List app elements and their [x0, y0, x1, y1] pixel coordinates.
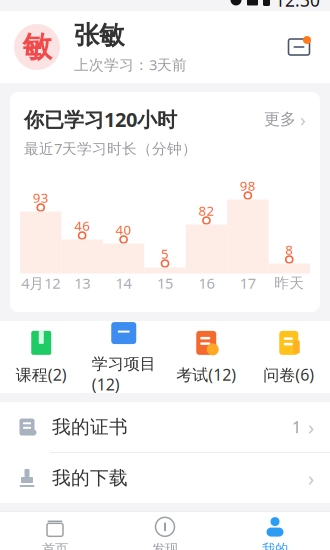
button[interactable]: 发现: [110, 512, 220, 550]
staticText: 16: [198, 273, 214, 293]
staticText: 最近7天学习时长（分钟）: [24, 138, 197, 158]
staticText: 昨天: [274, 274, 304, 292]
button[interactable]: 我的下载: [0, 453, 330, 503]
staticText: 发现: [152, 541, 178, 550]
staticText: 14: [116, 273, 132, 293]
staticText: 张敏: [74, 20, 124, 51]
button[interactable]: 我的: [220, 512, 330, 550]
button[interactable]: 头像: [14, 24, 60, 70]
button[interactable]: 学习项目(12): [82, 319, 165, 395]
button[interactable]: 问卷(6): [247, 329, 330, 385]
staticText: 15: [157, 273, 173, 293]
staticText: 我的: [262, 541, 288, 550]
staticText: 我的证书: [52, 416, 128, 438]
staticText: 93: [33, 189, 49, 206]
staticText: 学习项目(12): [92, 354, 156, 395]
staticText: 12:30: [275, 0, 320, 11]
button[interactable]: 更多: [264, 107, 306, 132]
button[interactable]: 首页: [0, 512, 110, 550]
staticText: ›: [300, 107, 306, 132]
button[interactable]: 考试(12): [165, 329, 247, 385]
button[interactable]: 课程(2): [0, 329, 82, 385]
staticText: 98: [240, 177, 256, 194]
staticText: 8: [285, 241, 293, 258]
staticText: 1: [292, 416, 301, 438]
staticText: 5: [161, 245, 169, 262]
staticText: 你已学习120小时: [24, 106, 177, 133]
staticText: 问卷(6): [263, 364, 314, 385]
staticText: 课程(2): [16, 364, 67, 385]
button[interactable]: 消息: [282, 32, 316, 62]
button[interactable]: 我的证书: [0, 402, 330, 452]
staticText: ›: [308, 414, 314, 440]
staticText: 上次学习：3天前: [74, 55, 187, 74]
staticText: 敏: [22, 29, 51, 65]
staticText: 更多: [264, 109, 296, 129]
staticText: 46: [74, 217, 90, 234]
staticText: ›: [308, 465, 314, 491]
staticText: 40: [116, 221, 132, 238]
staticText: 82: [198, 202, 214, 219]
staticText: 我的下载: [52, 467, 128, 489]
staticText: 17: [240, 273, 256, 293]
staticText: 13: [74, 273, 90, 293]
staticText: 首页: [42, 541, 68, 550]
staticText: 4月12: [21, 273, 60, 293]
staticText: 考试(12): [176, 364, 236, 385]
